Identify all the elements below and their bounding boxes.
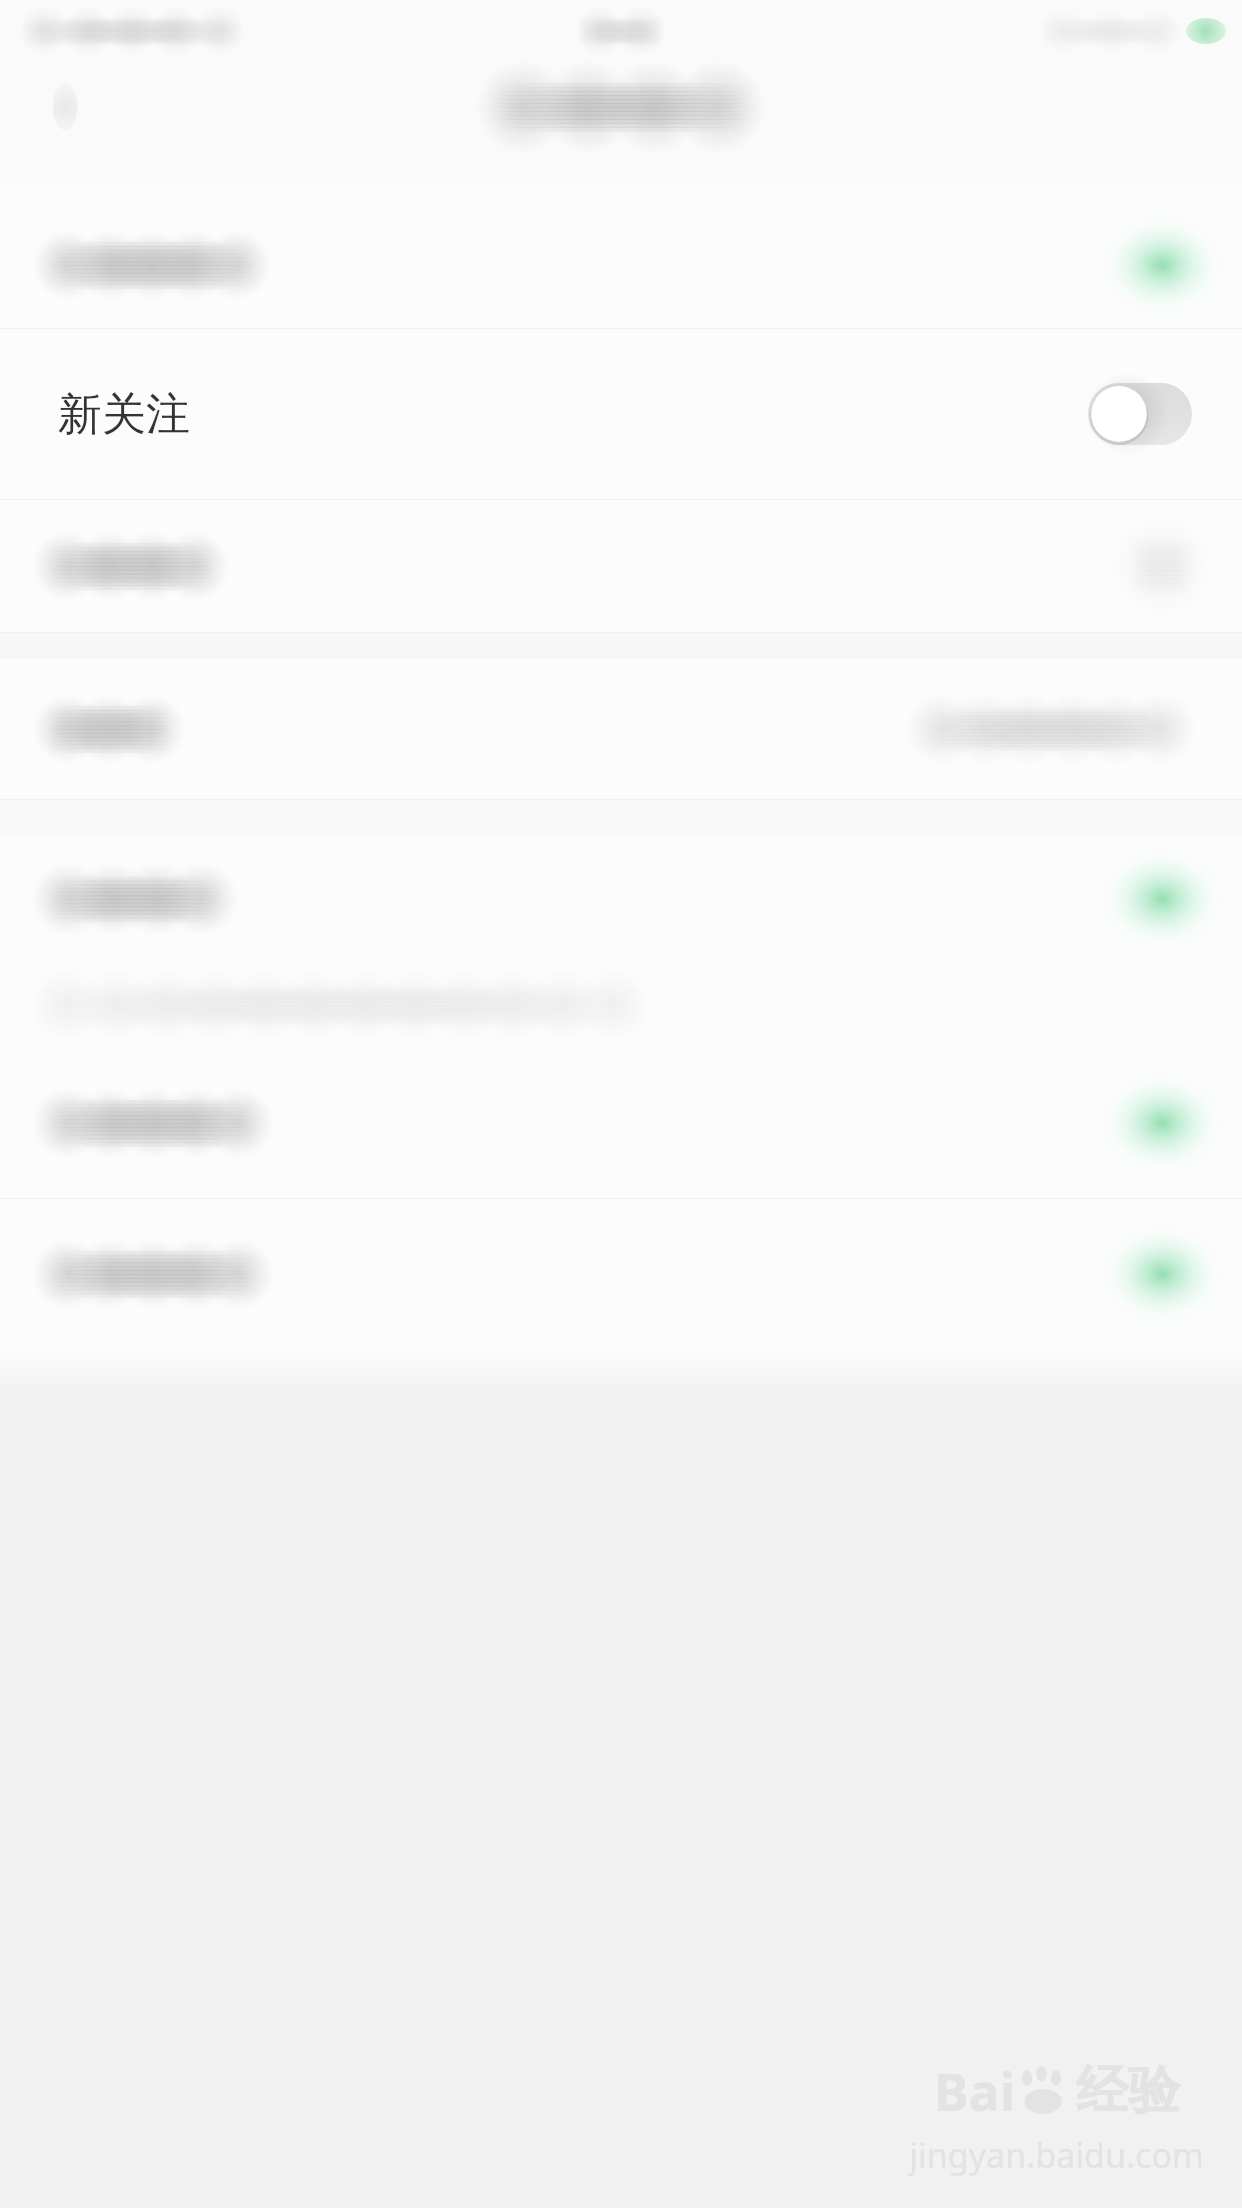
staticText: 经验: [1076, 2058, 1180, 2124]
button[interactable]: [0, 659, 1242, 799]
button[interactable]: Toggle on: [0, 836, 1242, 962]
button[interactable]: Back: [40, 79, 96, 135]
button[interactable]: Toggle on: [1104, 1077, 1216, 1169]
button[interactable]: 新关注: [0, 329, 1242, 499]
button[interactable]: Toggle on: [0, 1199, 1242, 1349]
staticText: jingyan.baidu.com: [909, 2132, 1204, 2178]
staticText: Bai: [934, 2055, 1016, 2126]
staticText: 新关注: [58, 387, 190, 442]
button[interactable]: 新关注 off: [1088, 383, 1192, 445]
button[interactable]: Toggle on: [1104, 219, 1216, 311]
button[interactable]: Toggle on: [0, 202, 1242, 328]
button[interactable]: [0, 500, 1242, 632]
button[interactable]: Toggle on: [1104, 853, 1216, 945]
button[interactable]: Toggle on: [1104, 1228, 1216, 1320]
button[interactable]: Toggle on: [0, 1048, 1242, 1198]
